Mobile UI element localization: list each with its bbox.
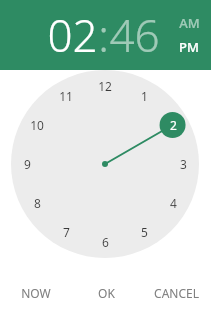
button[interactable]: AM [179, 14, 200, 32]
button[interactable]: 46 [109, 5, 160, 65]
staticText: 6 [102, 234, 109, 250]
button[interactable]: OK [71, 275, 141, 311]
staticText: 12 [98, 78, 112, 94]
staticText: 11 [59, 88, 73, 104]
button[interactable]: 10 [24, 112, 50, 138]
staticText: PM [179, 38, 199, 56]
staticText: 4 [170, 195, 177, 211]
staticText: 7 [63, 224, 70, 240]
button[interactable]: 6 [92, 229, 118, 255]
staticText: 8 [34, 195, 41, 211]
staticText: 2 [170, 117, 177, 133]
staticText: 10 [30, 117, 44, 133]
button[interactable]: 9 [14, 151, 40, 177]
staticText: CANCEL [154, 285, 199, 301]
button[interactable]: PM [179, 38, 199, 56]
button[interactable]: 1 [131, 83, 157, 109]
button[interactable]: 2 [160, 112, 186, 138]
staticText: 1 [141, 88, 148, 104]
staticText: NOW [21, 285, 51, 301]
button[interactable]: 8 [24, 190, 50, 216]
staticText: 9 [24, 156, 31, 172]
staticText: 5 [141, 224, 148, 240]
button[interactable]: NOW [0, 275, 71, 311]
staticText: AM [179, 14, 200, 32]
button[interactable]: 11 [53, 83, 79, 109]
button[interactable]: 12 [92, 73, 118, 99]
button[interactable]: 5 [131, 219, 157, 245]
button[interactable]: CANCEL [141, 275, 211, 311]
button[interactable]: 02 [47, 5, 98, 65]
button[interactable]: 4 [160, 190, 186, 216]
button[interactable]: 7 [53, 219, 79, 245]
staticText: 3 [180, 156, 187, 172]
button[interactable]: 3 [170, 151, 196, 177]
staticText: OK [98, 285, 115, 301]
staticText: : [98, 5, 109, 65]
